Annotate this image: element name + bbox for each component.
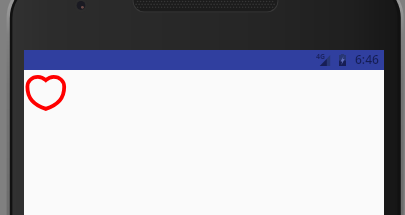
- staticText: 6:46: [355, 51, 379, 67]
- staticText: 4G: [316, 52, 326, 62]
- button[interactable]: Favorite: [24, 72, 70, 116]
